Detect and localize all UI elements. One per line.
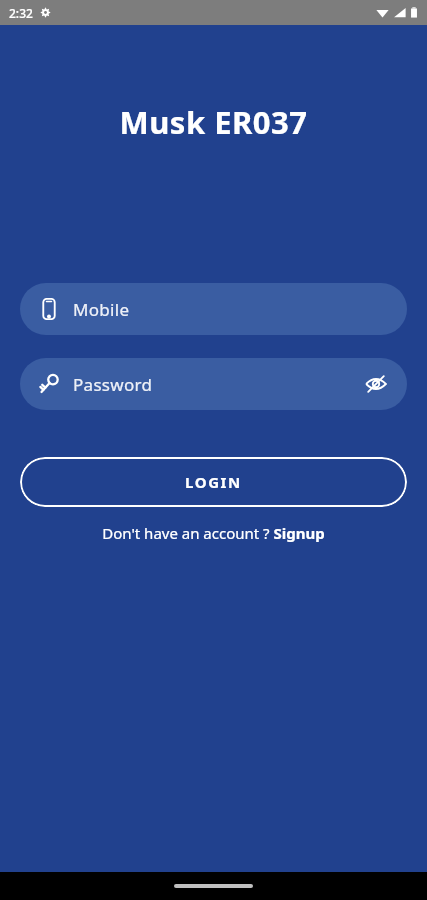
button[interactable]: Don't have an account ? Signup [0,523,427,543]
button[interactable]: Password [20,358,407,410]
button[interactable]: Show password [363,371,389,397]
staticText: LOGIN [185,472,242,492]
staticText: 2:32 [9,5,33,21]
button[interactable]: Mobile [20,283,407,335]
staticText: Mobile [73,298,130,321]
staticText: Password [73,373,153,396]
button[interactable]: LOGIN [20,457,407,507]
staticText: Don't have an account ? Signup [102,523,325,543]
staticText: Musk ER037 [119,101,308,143]
